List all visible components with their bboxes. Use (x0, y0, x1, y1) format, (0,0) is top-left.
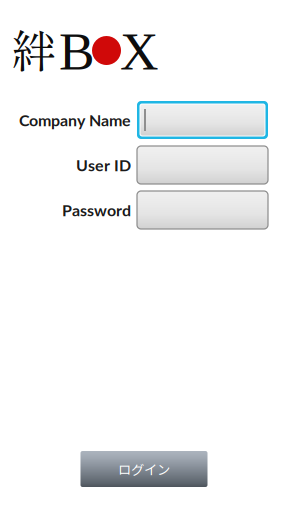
button[interactable]: ログイン (80, 451, 207, 487)
staticText: Password (62, 200, 131, 220)
staticText: X (120, 22, 159, 81)
staticText: ログイン (118, 459, 170, 479)
staticText: Company Name (19, 110, 131, 130)
staticText: User ID (76, 155, 131, 175)
staticText: 絆 (11, 16, 56, 82)
button[interactable]: Password (137, 191, 268, 229)
button[interactable]: Company Name (137, 101, 268, 139)
button[interactable]: User ID (137, 146, 268, 184)
staticText: B (59, 22, 95, 81)
